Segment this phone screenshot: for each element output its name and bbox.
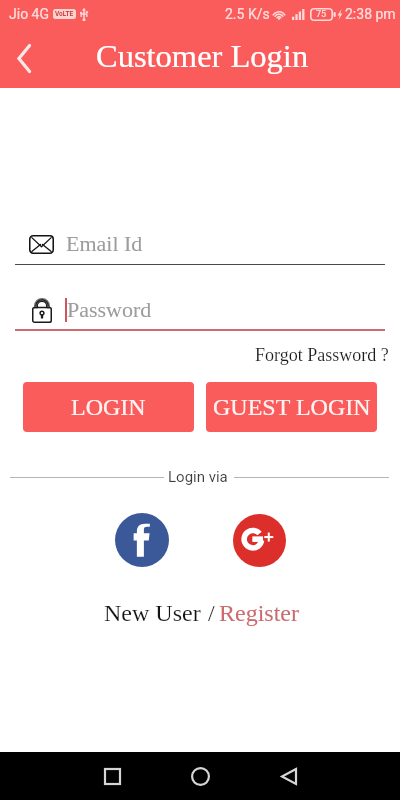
staticText: VoLTE [55,10,74,18]
staticText: 2.5 K/s [225,6,270,22]
button[interactable]: Recents [88,752,136,800]
button[interactable]: Sign in with Google [233,514,286,567]
staticText: LOGIN [71,394,146,421]
button[interactable]: Register [219,600,299,627]
staticText: New User [104,600,207,627]
staticText: / [208,600,215,627]
button[interactable]: GUEST LOGIN [206,382,377,432]
button[interactable]: Back [4,38,44,78]
button[interactable]: Back [265,752,313,800]
button[interactable]: Sign in with Facebook [115,513,169,567]
staticText: Login via [168,468,228,486]
staticText: Forgot Password ? [255,345,389,365]
button[interactable]: Home [176,752,224,800]
staticText: Password [67,297,152,321]
staticText: 2:38 pm [345,6,396,22]
button[interactable]: Forgot Password ? [242,342,394,368]
button[interactable]: LOGIN [23,382,194,432]
staticText: 75 [316,9,327,20]
staticText: Jio 4G [9,6,49,22]
staticText: Customer Login [96,38,309,74]
staticText: GUEST LOGIN [213,394,371,421]
staticText: Email Id [66,231,143,255]
